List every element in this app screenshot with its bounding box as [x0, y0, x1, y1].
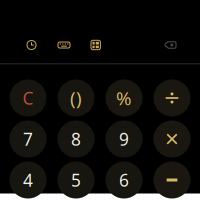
staticText: %	[116, 86, 132, 110]
button[interactable]: %	[105, 79, 142, 116]
button[interactable]: Recents	[24, 37, 39, 52]
button[interactable]: Divide	[153, 79, 190, 116]
staticText: C	[22, 86, 33, 109]
button[interactable]: ()	[57, 79, 94, 116]
staticText: 9	[119, 127, 129, 150]
button[interactable]: 5	[57, 161, 94, 198]
button[interactable]: Delete	[162, 39, 179, 51]
button[interactable]: Keyboard	[55, 39, 73, 51]
button[interactable]: 7	[9, 120, 46, 157]
staticText: 5	[71, 168, 81, 191]
staticText: 6	[119, 168, 129, 191]
button[interactable]: 9	[105, 120, 142, 157]
button[interactable]: 4	[9, 161, 46, 198]
staticText: 7	[23, 127, 33, 150]
button[interactable]: 8	[57, 120, 94, 157]
button[interactable]: Minus	[153, 161, 190, 198]
button[interactable]: Multiply	[153, 120, 190, 157]
staticText: 8	[71, 127, 81, 150]
staticText: 4	[23, 168, 33, 191]
button[interactable]: C	[9, 79, 46, 116]
button[interactable]: Tip	[88, 37, 103, 53]
button[interactable]: 6	[105, 161, 142, 198]
staticText: ()	[70, 86, 82, 110]
